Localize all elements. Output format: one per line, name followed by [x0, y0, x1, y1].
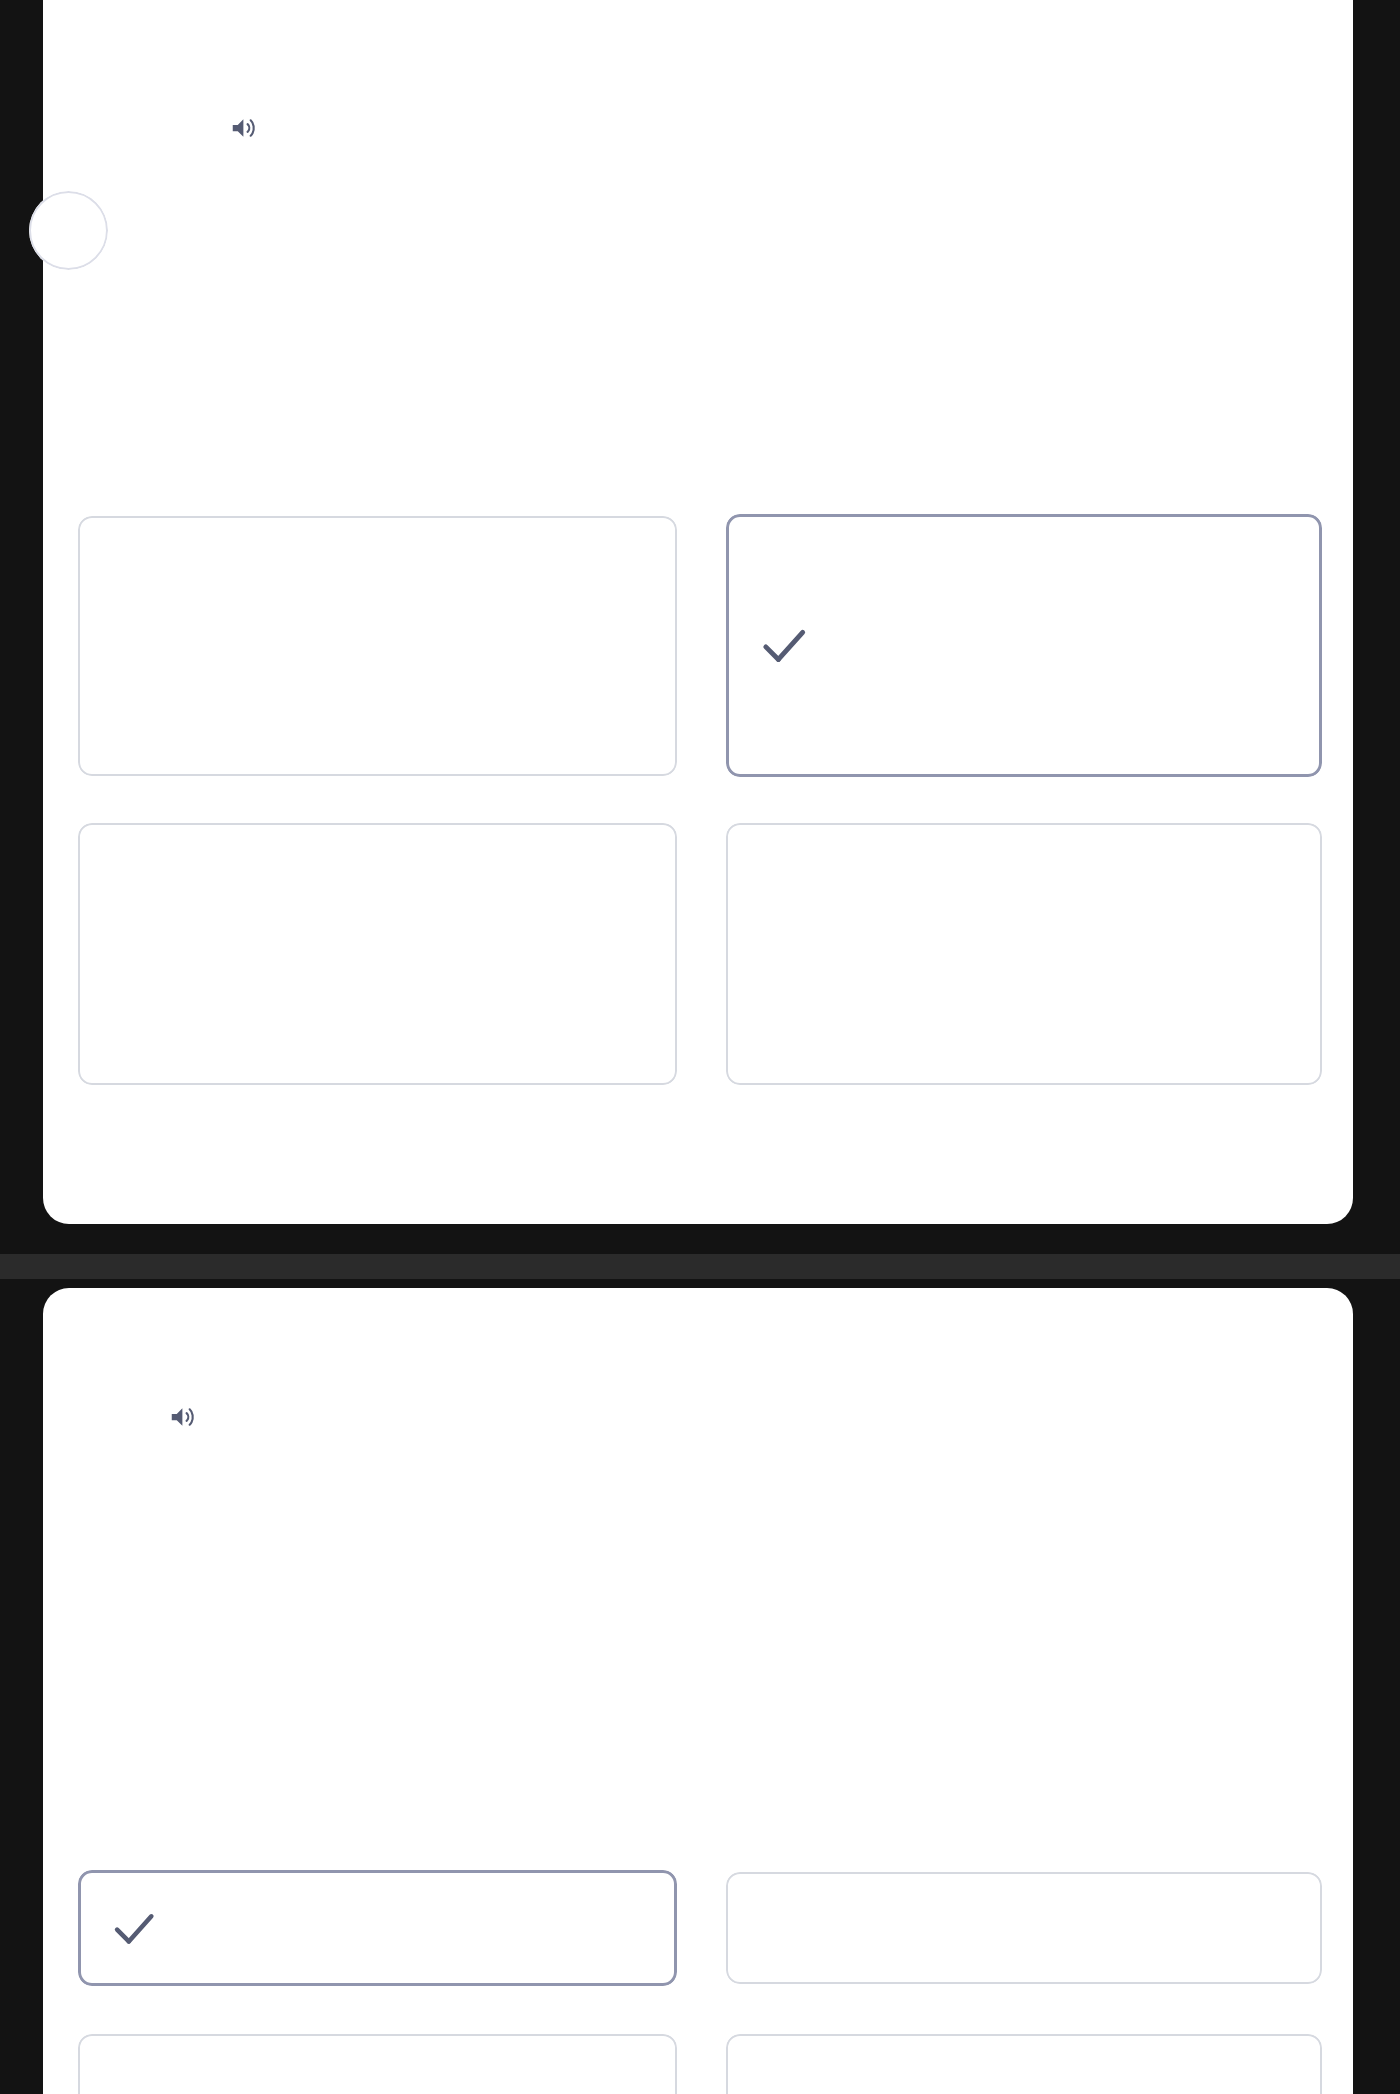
button[interactable]: Selected	[78, 1870, 677, 1986]
button[interactable]	[78, 823, 677, 1085]
button[interactable]: Avatar	[29, 191, 108, 270]
other: Selected	[756, 617, 812, 673]
other: Selected	[108, 1902, 160, 1954]
button[interactable]	[726, 1872, 1322, 1984]
button[interactable]: Selected	[726, 514, 1322, 777]
button[interactable]: Volume	[226, 110, 262, 146]
button[interactable]: Volume	[165, 1399, 201, 1435]
button[interactable]	[726, 823, 1322, 1085]
button[interactable]	[78, 2034, 677, 2094]
button[interactable]	[726, 2034, 1322, 2094]
button[interactable]	[78, 516, 677, 776]
